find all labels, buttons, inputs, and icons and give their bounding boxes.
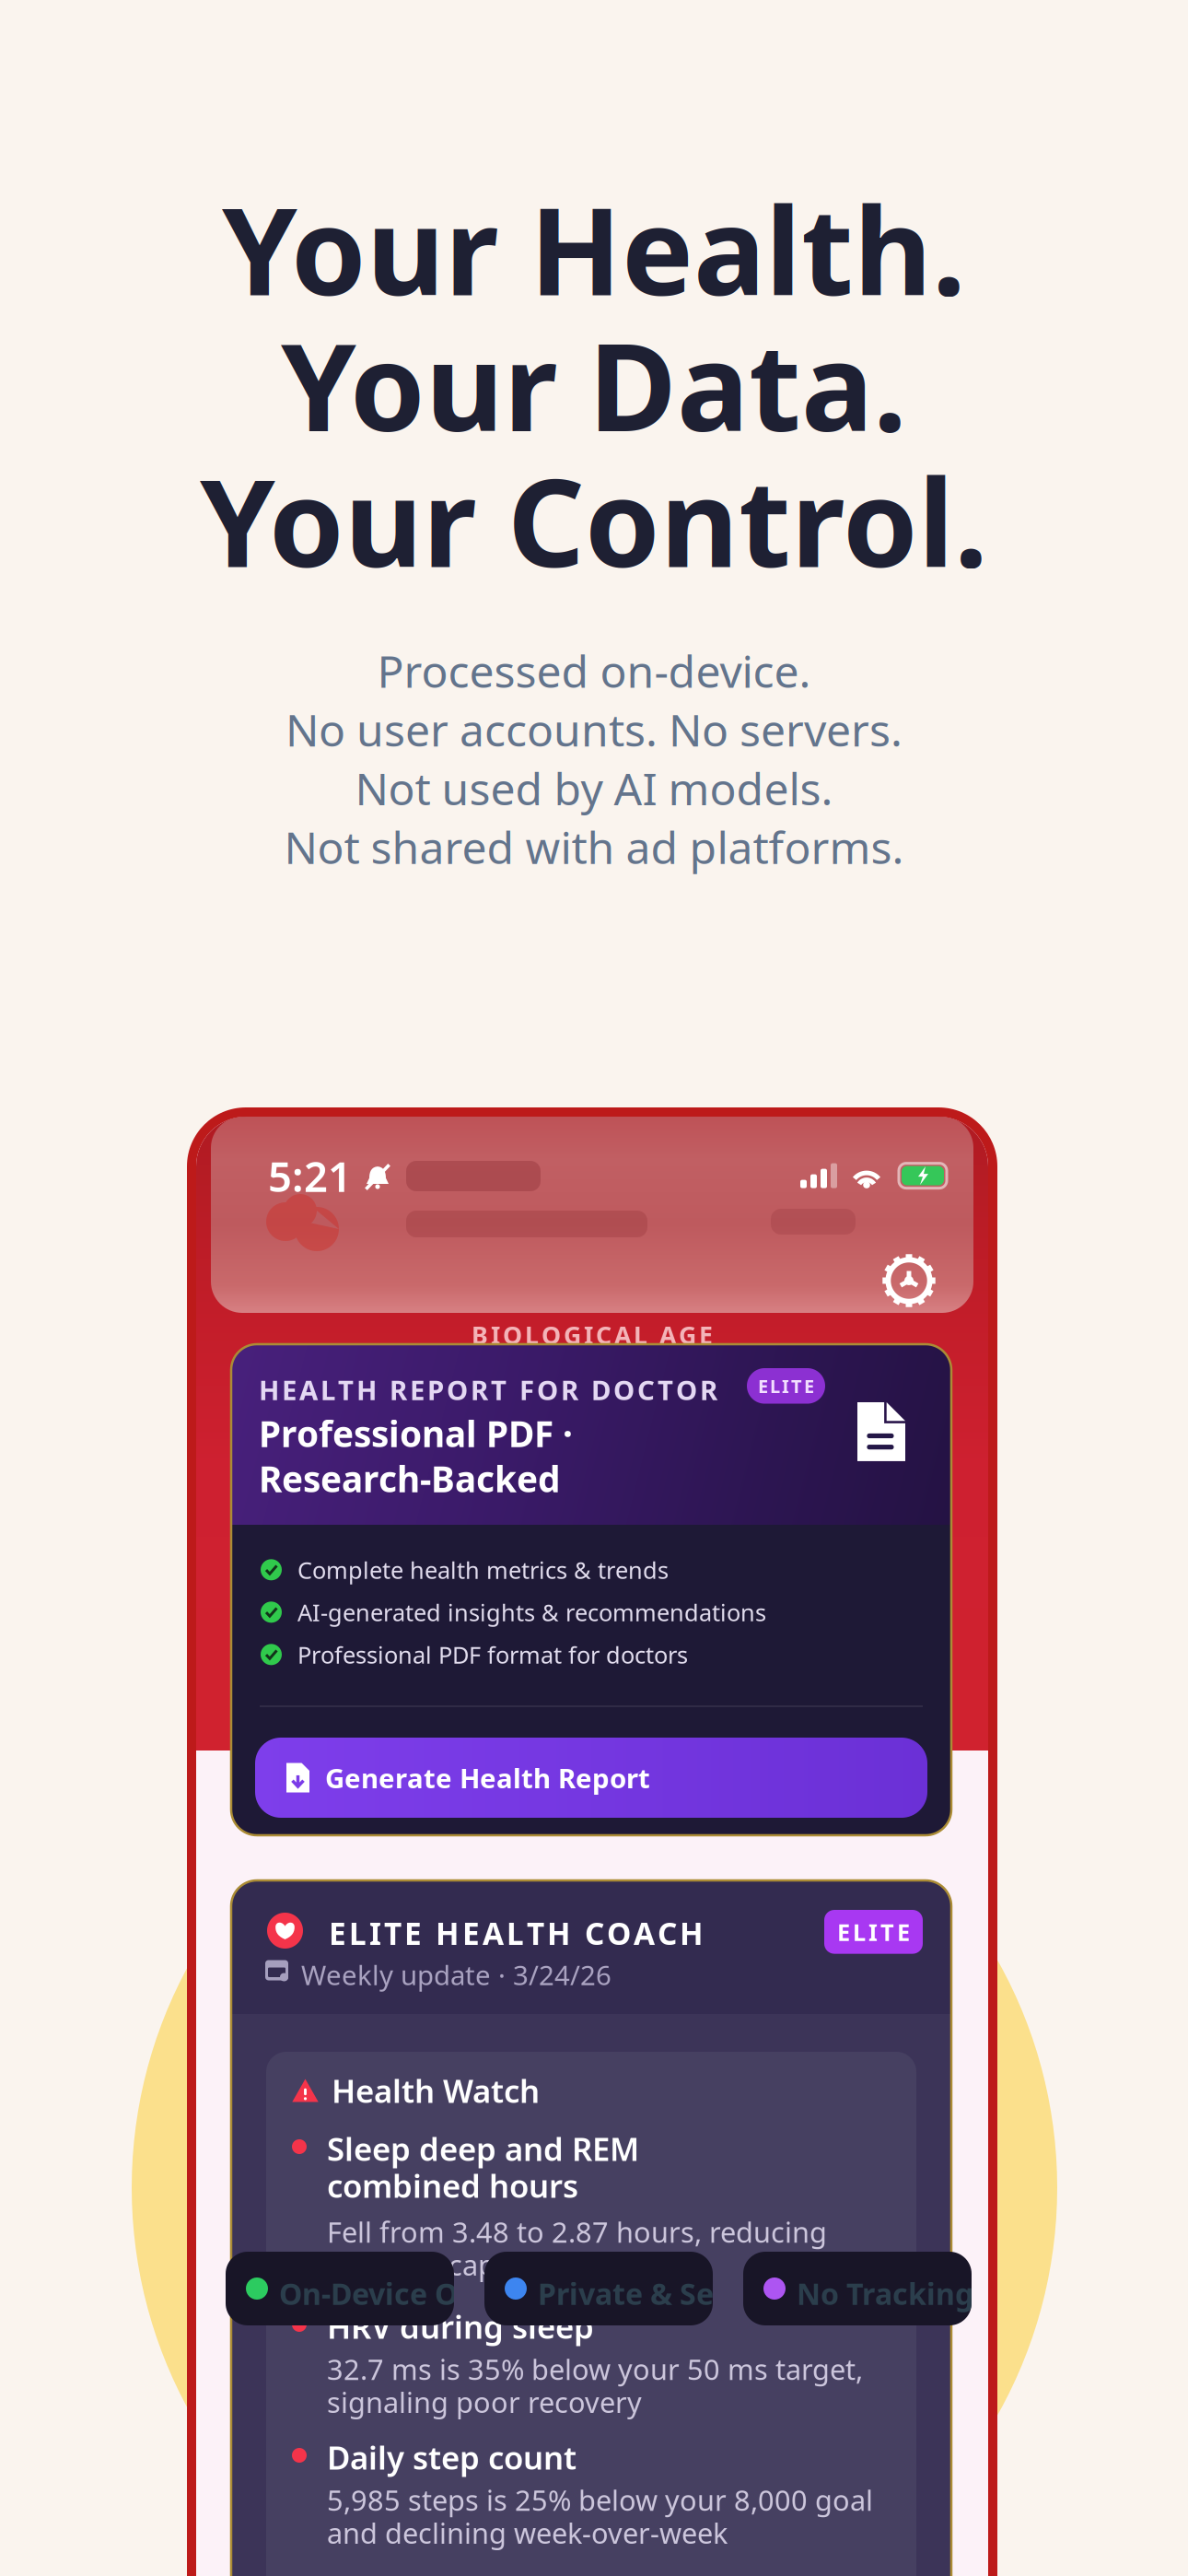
- staticText: E L I T E H E A L T H C O A C H: [329, 1913, 704, 1953]
- staticText: Not shared with ad platforms.: [284, 817, 904, 876]
- staticText: Generate Health Report: [325, 1760, 650, 1796]
- staticText: H E A L T H R E P O R T F O R D O C T O …: [259, 1372, 717, 1408]
- staticText: 5:21: [268, 1148, 352, 1203]
- staticText: Professional PDF ·: [259, 1410, 573, 1457]
- staticText: Research-Backed: [259, 1455, 560, 1502]
- staticText: Your Health.: [222, 169, 966, 328]
- staticText: HRV during sleep: [327, 2305, 594, 2348]
- staticText: combined hours: [327, 2164, 578, 2207]
- staticText: B I O L O G I C A L A G E: [472, 1318, 713, 1351]
- staticText: and declining week-over-week: [327, 2514, 728, 2551]
- staticText: 5,985 steps is 25% below your 8,000 goal: [327, 2481, 873, 2519]
- staticText: Not used by AI models.: [355, 759, 833, 817]
- staticText: Sleep deep and REM: [327, 2127, 639, 2170]
- button[interactable]: Settings: [874, 1246, 944, 1316]
- staticText: Professional PDF format for doctors: [297, 1639, 688, 1670]
- staticText: Weekly update · 3/24/26: [301, 1957, 611, 1993]
- staticText: Fell from 3.48 to 2.87 hours, reducing: [327, 2213, 827, 2250]
- staticText: Processed on-device.: [377, 641, 811, 700]
- staticText: No user accounts. No servers.: [285, 700, 903, 759]
- staticText: E L I T E: [758, 1374, 814, 1398]
- staticText: recovery capacity: [327, 2246, 557, 2283]
- staticText: On-Device Only: [279, 2274, 503, 2313]
- staticText: Private & Secure: [538, 2274, 779, 2313]
- staticText: No Tracking: [797, 2274, 973, 2313]
- staticText: Complete health metrics & trends: [297, 1554, 669, 1585]
- staticText: AI-generated insights & recommendations: [297, 1597, 766, 1628]
- staticText: E L I T E: [837, 1916, 910, 1947]
- staticText: Your Control.: [200, 440, 988, 600]
- staticText: 32.7 ms is 35% below your 50 ms target,: [327, 2350, 863, 2388]
- button[interactable]: Generate Health Report: [255, 1738, 927, 1818]
- staticText: Daily step count: [327, 2436, 577, 2478]
- staticText: Health Watch: [332, 2069, 540, 2112]
- staticText: signaling poor recovery: [327, 2383, 642, 2421]
- staticText: Your Data.: [281, 304, 907, 464]
